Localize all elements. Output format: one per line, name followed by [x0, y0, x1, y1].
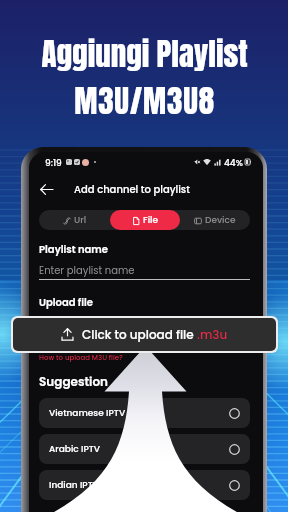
button[interactable]: Vietnamese IPTV: [39, 398, 250, 428]
button[interactable]: Click to upload file: [13, 318, 276, 351]
staticText: Indian IPTV: [49, 479, 100, 492]
staticText: 9:19: [45, 157, 62, 167]
staticText: Aggiungi Playlist: [41, 31, 248, 78]
button[interactable]: Url: [39, 210, 110, 230]
staticText: Suggestion: [39, 373, 109, 390]
staticText: File: [143, 214, 158, 227]
button[interactable]: How to upload M3U file?: [39, 353, 123, 363]
button[interactable]: Indian IPTV: [39, 470, 250, 500]
button[interactable]: File: [110, 210, 180, 230]
staticText: Upload file: [39, 295, 94, 309]
button[interactable]: Arabic IPTV: [39, 434, 250, 464]
staticText: Url: [74, 214, 87, 227]
staticText: Device: [205, 214, 236, 227]
button[interactable]: Enter playlist name: [39, 263, 135, 277]
staticText: Click to upload file: [82, 326, 197, 343]
staticText: Vietnamese IPTV: [49, 407, 126, 420]
staticText: M3U/M3U8: [74, 78, 215, 125]
staticText: .m3u: [197, 326, 228, 343]
staticText: 44%: [224, 157, 243, 167]
staticText: Arabic IPTV: [49, 443, 101, 456]
button[interactable]: Back: [36, 179, 56, 199]
staticText: Playlist name: [39, 242, 108, 256]
button[interactable]: Device: [180, 210, 250, 230]
staticText: Add channel to playlist: [74, 182, 190, 196]
